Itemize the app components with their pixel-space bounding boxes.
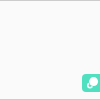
button[interactable]: New message: [82, 74, 100, 92]
